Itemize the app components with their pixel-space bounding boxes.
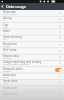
staticText: 1st (3, 19, 7, 22)
button[interactable]: Usage reporting and history (0, 60, 64, 66)
staticText: Auto-sync (3, 73, 17, 77)
staticText: Mobile data (3, 54, 20, 58)
staticText: 3 apps (3, 45, 10, 48)
button[interactable]: Data saver (0, 86, 64, 92)
button[interactable]: About data (0, 92, 64, 98)
button[interactable]: Back (0, 3, 5, 10)
staticText: Weekly (3, 70, 11, 73)
button[interactable]: Reset data (0, 79, 64, 85)
staticText: Detailed weekly summary (3, 63, 30, 66)
staticText: Network alerts (3, 67, 24, 71)
staticText: Clear (3, 82, 9, 85)
button[interactable]: Toggle (55, 68, 62, 72)
staticText: 2 GB / month (3, 13, 17, 16)
staticText: Off (3, 38, 7, 41)
button[interactable]: Billing (0, 16, 64, 22)
staticText: Off (3, 89, 7, 92)
button[interactable]: Wi-Fi data (0, 48, 64, 54)
staticText: Cap (3, 23, 9, 27)
staticText: 1.8 (3, 32, 7, 35)
staticText: Wi-Fi data (3, 48, 17, 52)
button[interactable]: Auto-sync (0, 73, 64, 79)
staticText: Warn (3, 29, 11, 33)
button[interactable]: Mobile data (0, 54, 64, 60)
button[interactable]: Warn (0, 29, 64, 35)
staticText: Enabled (3, 57, 12, 60)
staticText: Data roaming (3, 35, 22, 39)
button[interactable]: Network alerts (0, 67, 64, 73)
button[interactable]: Cap (0, 23, 64, 29)
staticText: On (3, 51, 7, 54)
staticText: Data usage (6, 4, 26, 9)
staticText: Billing (3, 16, 12, 20)
staticText: Daily (3, 76, 9, 79)
staticText: About data (3, 92, 19, 96)
staticText: Usage reporting and history (3, 60, 42, 64)
button[interactable]: Data plan (0, 10, 64, 16)
staticText: Data plan (3, 10, 17, 14)
button[interactable]: Data roaming (0, 35, 64, 41)
staticText: Reset data (3, 79, 18, 83)
staticText: Data saver (3, 86, 18, 90)
staticText: 2 GB (3, 26, 8, 29)
staticText: Restricted (3, 42, 17, 46)
button[interactable]: Restricted (0, 42, 64, 48)
